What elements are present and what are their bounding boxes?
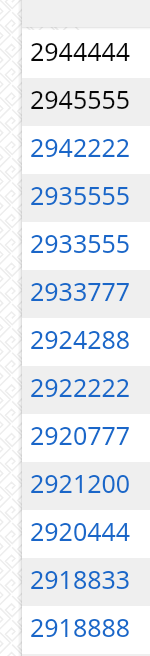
staticText: 2920444 bbox=[30, 514, 131, 548]
staticText: 2945555 bbox=[30, 82, 131, 116]
staticText: 2918833 bbox=[30, 562, 131, 596]
staticText: 2933777 bbox=[30, 274, 131, 308]
button[interactable]: 2922222 bbox=[22, 366, 150, 414]
other: Decorative pattern bbox=[0, 0, 22, 656]
staticText: 2924288 bbox=[30, 322, 131, 356]
button[interactable]: 2933555 bbox=[22, 222, 150, 270]
button[interactable]: 2942222 bbox=[22, 126, 150, 174]
button[interactable]: 2945555 bbox=[22, 78, 150, 126]
staticText: 2921200 bbox=[30, 466, 131, 500]
button[interactable]: 2921200 bbox=[22, 462, 150, 510]
button[interactable]: 2944444 bbox=[22, 30, 150, 78]
staticText: 2922222 bbox=[30, 370, 131, 404]
staticText: 2942222 bbox=[30, 130, 131, 164]
staticText: 2918888 bbox=[30, 610, 131, 644]
button[interactable]: 2935555 bbox=[22, 174, 150, 222]
button[interactable]: 2918888 bbox=[22, 606, 150, 654]
staticText: 2933555 bbox=[30, 226, 131, 260]
button[interactable]: 2920777 bbox=[22, 414, 150, 462]
button[interactable]: 2924288 bbox=[22, 318, 150, 366]
staticText: 2935555 bbox=[30, 178, 131, 212]
staticText: 2944444 bbox=[30, 34, 131, 68]
button[interactable]: 2933777 bbox=[22, 270, 150, 318]
button[interactable]: 2920444 bbox=[22, 510, 150, 558]
staticText: 2920777 bbox=[30, 418, 131, 452]
button[interactable]: 2918833 bbox=[22, 558, 150, 606]
